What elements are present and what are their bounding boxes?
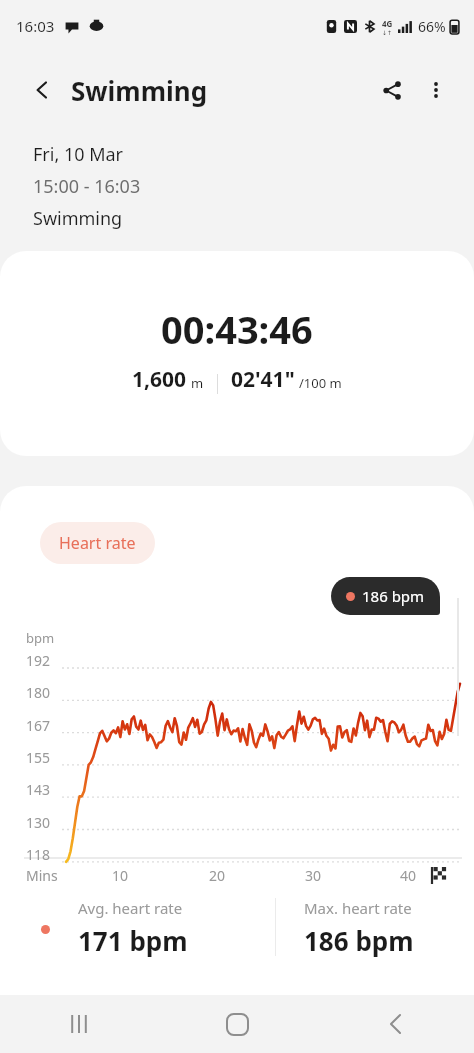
staticText: Max. heart rate — [304, 898, 412, 918]
staticText: 143 — [26, 780, 51, 799]
staticText: 15:00 - 16:03 — [33, 174, 141, 199]
staticText: 192 — [26, 651, 51, 670]
button[interactable]: 00:43:46 — [0, 251, 474, 456]
staticText: bpm — [26, 629, 55, 647]
staticText: 00:43:46 — [161, 303, 313, 355]
staticText: Heart rate — [59, 532, 136, 554]
staticText: 16:03 — [16, 16, 55, 36]
staticText: Swimming — [33, 206, 123, 231]
staticText: 155 — [26, 748, 51, 767]
staticText: Mins — [26, 866, 58, 885]
staticText: 02'41" — [231, 365, 295, 394]
staticText: 66% — [418, 17, 446, 36]
staticText: 118 — [26, 845, 51, 864]
staticText: 10 — [112, 866, 129, 885]
button[interactable]: More options — [414, 68, 458, 112]
staticText: 30 — [305, 866, 322, 885]
staticText: 130 — [26, 813, 51, 832]
button[interactable]: Back — [316, 995, 474, 1053]
staticText: 180 — [26, 683, 51, 702]
button[interactable]: Share — [370, 68, 414, 112]
button[interactable]: Max. heart rate — [304, 898, 474, 958]
button[interactable]: Back — [20, 68, 64, 112]
staticText: 167 — [26, 716, 51, 735]
staticText: m — [191, 374, 204, 392]
button[interactable]: Home — [158, 995, 316, 1053]
button[interactable]: Avg. heart rate — [78, 898, 275, 958]
staticText: ↓↑ — [382, 29, 393, 36]
staticText: 1,600 — [132, 365, 187, 394]
staticText: Fri, 10 Mar — [33, 142, 124, 167]
staticText: 20 — [209, 866, 226, 885]
staticText: 186 bpm — [362, 586, 425, 606]
staticText: 40 — [400, 866, 417, 885]
staticText: /100 m — [299, 374, 342, 392]
staticText: 4G — [382, 18, 393, 29]
staticText: Swimming — [71, 73, 208, 108]
staticText: 186 bpm — [304, 923, 414, 958]
staticText: 171 bpm — [78, 923, 188, 958]
button[interactable]: 186 bpm — [331, 577, 440, 615]
button[interactable]: Heart rate — [40, 522, 155, 564]
staticText: Avg. heart rate — [78, 898, 183, 918]
button[interactable]: Recent apps — [0, 995, 158, 1053]
